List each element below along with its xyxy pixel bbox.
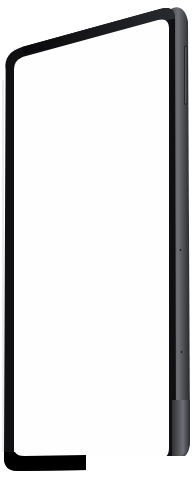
button[interactable]: Device: [0, 0, 196, 478]
button[interactable]: Tablet product photo: [0, 0, 196, 478]
